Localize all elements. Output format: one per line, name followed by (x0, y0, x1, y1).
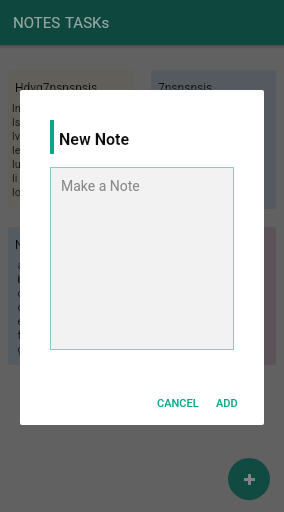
staticText: TASKs (65, 14, 110, 32)
button[interactable]: Make a Note (50, 167, 234, 350)
button[interactable]: CANCEL (151, 391, 205, 416)
button[interactable]: Note (8, 227, 133, 365)
button[interactable]: TASKs (63, 14, 123, 32)
staticText: f (12, 329, 22, 342)
staticText: g (12, 343, 24, 356)
staticText: New Note (59, 130, 130, 149)
button[interactable]: 7nsnsnsis (151, 70, 276, 209)
staticText: le (12, 144, 21, 157)
staticText: d (12, 301, 24, 314)
staticText: NOTES (13, 14, 61, 32)
button[interactable]: ADD (210, 391, 244, 416)
staticText: lv (12, 130, 21, 143)
button[interactable]: NOTES (0, 14, 63, 32)
staticText: ln (12, 102, 21, 115)
staticText: e (12, 315, 24, 328)
button[interactable]: Hdvg7nsnsnsis (8, 70, 133, 209)
staticText: Note (15, 238, 41, 252)
staticText: c (12, 287, 24, 300)
staticText: 7nsnsnsis (158, 81, 213, 95)
staticText: lo (12, 186, 21, 199)
staticText: b (12, 273, 24, 286)
staticText: Hdvg7nsnsnsis (15, 81, 98, 95)
staticText: CANCEL (157, 397, 199, 410)
staticText: li (12, 172, 18, 185)
staticText: ADD (216, 397, 238, 410)
button[interactable]: Add note (228, 458, 270, 500)
staticText: Make a Note (61, 178, 140, 194)
staticText: lu (12, 158, 21, 171)
staticText: a (12, 259, 24, 272)
button[interactable]: Note (151, 227, 276, 365)
staticText: ls (12, 116, 21, 129)
